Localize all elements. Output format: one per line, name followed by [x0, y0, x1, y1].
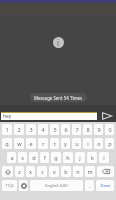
staticText: k: [91, 154, 94, 161]
staticText: e: [29, 140, 33, 147]
button[interactable]: y: [61, 138, 70, 149]
button[interactable]: c: [37, 166, 47, 177]
button[interactable]: d: [29, 152, 38, 163]
staticText: q: [5, 140, 9, 147]
button[interactable]: Send: [97, 110, 116, 121]
staticText: Message Sent 54 Times: [34, 95, 83, 101]
staticText: 7: [75, 126, 79, 133]
staticText: b: [64, 168, 68, 175]
staticText: hey: [3, 113, 12, 120]
staticText: o: [97, 140, 101, 147]
button[interactable]: k: [87, 152, 97, 163]
staticText: r: [42, 140, 45, 147]
staticText: 9: [97, 126, 101, 133]
button[interactable]: ?1☺: [2, 180, 17, 191]
button[interactable]: 8: [83, 124, 92, 135]
button[interactable]: Info: [53, 37, 64, 48]
staticText: n: [76, 168, 80, 175]
button[interactable]: a: [7, 152, 16, 163]
button[interactable]: j: [75, 152, 85, 163]
button[interactable]: Shift: [2, 166, 13, 177]
button[interactable]: l: [99, 152, 109, 163]
staticText: English (UK): [45, 183, 68, 188]
button[interactable]: English (UK): [30, 180, 83, 191]
button[interactable]: 2: [14, 124, 24, 135]
button[interactable]: u: [72, 138, 81, 149]
staticText: z: [18, 168, 21, 175]
staticText: v: [53, 168, 56, 175]
button[interactable]: t: [50, 138, 59, 149]
staticText: m: [87, 168, 93, 175]
staticText: d: [32, 154, 36, 161]
button[interactable]: 1: [2, 124, 12, 135]
staticText: f: [44, 154, 46, 161]
button[interactable]: p: [105, 138, 114, 149]
staticText: p: [108, 140, 112, 147]
button[interactable]: 3: [26, 124, 36, 135]
staticText: .: [89, 182, 91, 189]
button[interactable]: 0: [105, 124, 114, 135]
staticText: u: [75, 140, 79, 147]
button[interactable]: z: [15, 166, 24, 177]
staticText: 5: [53, 126, 57, 133]
button[interactable]: h: [63, 152, 73, 163]
staticText: t: [54, 140, 56, 147]
button[interactable]: x: [26, 166, 35, 177]
button[interactable]: 5: [50, 124, 59, 135]
button[interactable]: b: [61, 166, 71, 177]
staticText: c: [41, 168, 44, 175]
staticText: Done: [100, 183, 111, 188]
staticText: ?1☺: [5, 183, 14, 188]
staticText: 2: [17, 126, 21, 133]
button[interactable]: w: [14, 138, 24, 149]
staticText: w: [17, 140, 22, 147]
staticText: 0: [108, 126, 112, 133]
button[interactable]: r: [38, 138, 48, 149]
button[interactable]: s: [18, 152, 27, 163]
button[interactable]: Message Sent 54 Times: [30, 93, 87, 102]
staticText: a: [10, 154, 14, 161]
button[interactable]: o: [94, 138, 103, 149]
button[interactable]: 6: [61, 124, 70, 135]
button[interactable]: m: [85, 166, 95, 177]
button[interactable]: e: [26, 138, 36, 149]
button[interactable]: n: [73, 166, 83, 177]
staticText: s: [21, 154, 24, 161]
button[interactable]: .: [85, 180, 94, 191]
staticText: h: [66, 154, 70, 161]
staticText: x: [29, 168, 32, 175]
button[interactable]: Settings: [19, 180, 28, 191]
staticText: i: [87, 140, 89, 147]
staticText: 4: [41, 126, 45, 133]
button[interactable]: hey: [1, 113, 97, 120]
button[interactable]: i: [83, 138, 92, 149]
button[interactable]: g: [51, 152, 61, 163]
staticText: y: [64, 140, 67, 147]
staticText: 3: [29, 126, 33, 133]
button[interactable]: 9: [94, 124, 103, 135]
staticText: 6: [64, 126, 68, 133]
staticText: 8: [86, 126, 90, 133]
button[interactable]: v: [49, 166, 59, 177]
staticText: l: [103, 154, 105, 161]
button[interactable]: f: [40, 152, 49, 163]
button[interactable]: 7: [72, 124, 81, 135]
staticText: g: [54, 154, 58, 161]
staticText: i: [57, 37, 60, 48]
staticText: j: [79, 154, 81, 161]
staticText: 1: [5, 126, 9, 133]
button[interactable]: 4: [38, 124, 48, 135]
button[interactable]: Done: [96, 180, 114, 191]
button[interactable]: q: [2, 138, 12, 149]
button[interactable]: Backspace: [97, 166, 114, 177]
